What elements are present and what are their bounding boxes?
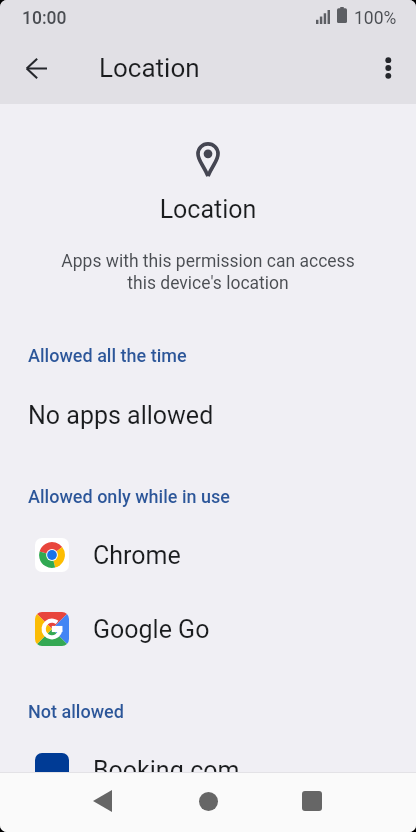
staticText: Booking.com xyxy=(93,756,240,785)
staticText: Not allowed xyxy=(28,701,124,722)
button[interactable]: Home xyxy=(184,777,232,825)
button[interactable]: Back xyxy=(78,777,126,825)
button[interactable]: Booking.com xyxy=(0,743,416,797)
staticText: Google Go xyxy=(93,615,210,644)
staticText: 10:00 xyxy=(22,8,67,29)
staticText: Location xyxy=(0,195,416,224)
staticText: Chrome xyxy=(93,541,181,570)
button[interactable]: More options xyxy=(363,43,412,92)
staticText: Allowed all the time xyxy=(28,345,187,366)
button[interactable]: Google Go xyxy=(0,602,416,656)
staticText: Allowed only while in use xyxy=(28,486,231,507)
staticText: No apps allowed xyxy=(28,401,214,430)
staticText: Location xyxy=(99,53,200,83)
staticText: Apps with this permission can access thi… xyxy=(0,251,416,294)
staticText: 100% xyxy=(354,8,397,29)
button[interactable]: Navigate up xyxy=(12,44,61,93)
button[interactable]: Recent apps xyxy=(288,777,336,825)
button[interactable]: Chrome xyxy=(0,528,416,582)
